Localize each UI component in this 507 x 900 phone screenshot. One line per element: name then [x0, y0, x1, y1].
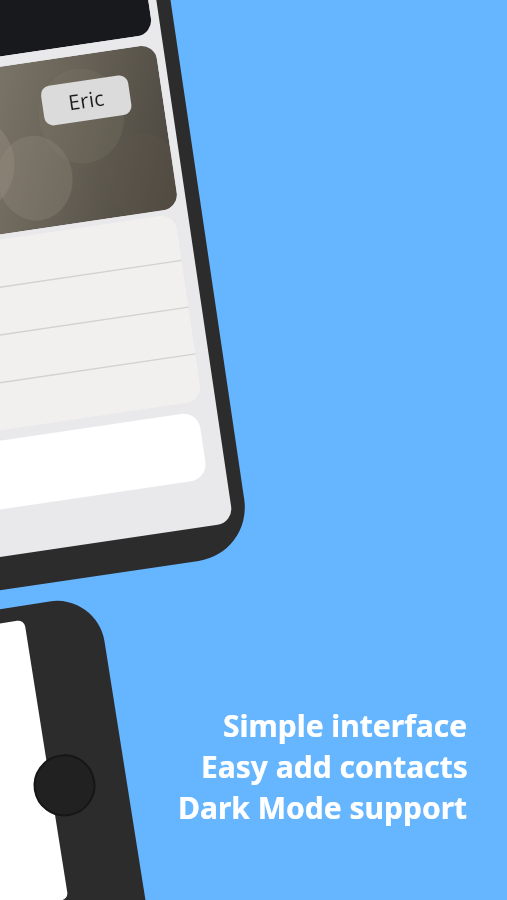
button[interactable]: App promo: Simple interface, Easy add co…	[0, 0, 507, 900]
